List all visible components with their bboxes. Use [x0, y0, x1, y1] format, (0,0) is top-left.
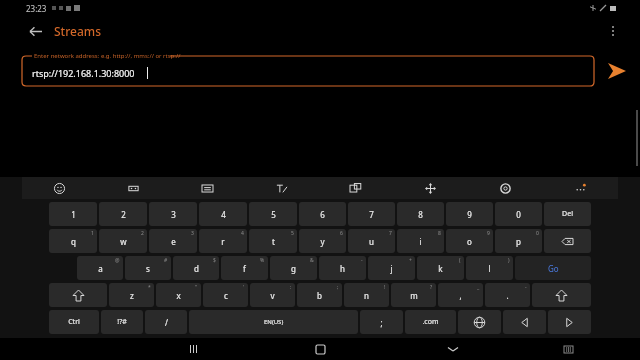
button[interactable]: Split keyboard: [318, 177, 393, 199]
button[interactable]: Handwriting: [244, 177, 318, 199]
button[interactable]: i: [397, 229, 444, 253]
button[interactable]: 2: [99, 202, 147, 226]
staticText: !: [384, 284, 386, 291]
button[interactable]: !?#: [101, 310, 143, 334]
button[interactable]: Ctrl: [49, 310, 99, 334]
staticText: k: [438, 263, 443, 274]
button[interactable]: Del: [544, 202, 591, 226]
button[interactable]: x: [156, 283, 201, 307]
button[interactable]: s: [125, 256, 171, 280]
button[interactable]: c: [203, 283, 248, 307]
button[interactable]: u: [348, 229, 395, 253]
button[interactable]: Hide keyboard: [440, 338, 466, 360]
button[interactable]: Shift: [532, 283, 591, 307]
staticText: (: [459, 257, 461, 264]
staticText: !?#: [117, 317, 127, 327]
staticText: -: [361, 257, 363, 264]
button[interactable]: n: [344, 283, 389, 307]
button[interactable]: Change language: [458, 310, 501, 334]
button[interactable]: 1: [49, 202, 97, 226]
button[interactable]: Recents: [180, 338, 206, 360]
staticText: Streams: [54, 23, 101, 39]
button[interactable]: Keyboard layout: [558, 339, 578, 359]
button[interactable]: h: [319, 256, 366, 280]
button[interactable]: b: [297, 283, 342, 307]
button[interactable]: Shift: [49, 283, 107, 307]
button[interactable]: Settings: [468, 177, 543, 199]
button[interactable]: Home: [307, 338, 333, 360]
button[interactable]: Backspace: [544, 229, 591, 253]
button[interactable]: q: [49, 229, 97, 253]
staticText: z: [130, 290, 134, 301]
button[interactable]: Enter network address: e.g. http://, mms…: [22, 56, 594, 86]
button[interactable]: o: [446, 229, 493, 253]
button[interactable]: f: [221, 256, 268, 280]
button[interactable]: Move right: [548, 310, 591, 334]
button[interactable]: Keyboard layout: [170, 177, 244, 199]
staticText: r: [221, 236, 225, 247]
button[interactable]: 6: [299, 202, 346, 226]
staticText: ;: [380, 317, 383, 328]
staticText: 2: [141, 230, 144, 237]
staticText: ;: [337, 284, 339, 291]
button[interactable]: p: [495, 229, 542, 253]
staticText: ?: [430, 284, 433, 291]
staticText: ": [195, 284, 198, 291]
button[interactable]: w: [99, 229, 147, 253]
button[interactable]: 7: [348, 202, 395, 226]
button[interactable]: 0: [495, 202, 542, 226]
staticText: o: [467, 236, 472, 247]
button[interactable]: y: [299, 229, 346, 253]
button[interactable]: t: [249, 229, 297, 253]
button[interactable]: More options: [600, 18, 626, 44]
button[interactable]: Stickers: [96, 177, 170, 199]
staticText: Enter network address: e.g. http://, mms…: [34, 52, 181, 60]
button[interactable]: a: [77, 256, 123, 280]
staticText: ): [508, 257, 510, 264]
button[interactable]: Move left: [503, 310, 546, 334]
button[interactable]: /: [145, 310, 187, 334]
staticText: .: [506, 290, 509, 301]
staticText: 6: [320, 209, 325, 220]
staticText: i: [419, 236, 422, 247]
staticText: #: [164, 257, 168, 264]
staticText: 23:23: [26, 3, 47, 14]
button[interactable]: l: [466, 256, 513, 280]
staticText: q: [71, 236, 76, 247]
staticText: a: [98, 263, 103, 274]
button[interactable]: v: [250, 283, 295, 307]
staticText: t: [272, 236, 275, 247]
button[interactable]: m: [391, 283, 436, 307]
staticText: 3: [191, 230, 194, 237]
button[interactable]: 5: [249, 202, 297, 226]
button[interactable]: Back: [22, 18, 48, 44]
button[interactable]: ;: [360, 310, 403, 334]
staticText: h: [340, 263, 345, 274]
button[interactable]: 8: [397, 202, 444, 226]
staticText: %: [260, 257, 265, 264]
button[interactable]: ,: [438, 283, 483, 307]
staticText: j: [390, 263, 393, 274]
button[interactable]: e: [149, 229, 197, 253]
button[interactable]: More: [543, 177, 618, 199]
staticText: 5: [291, 230, 294, 237]
button[interactable]: Go: [515, 256, 591, 280]
button[interactable]: j: [368, 256, 415, 280]
button[interactable]: r: [199, 229, 247, 253]
button[interactable]: .com: [405, 310, 456, 334]
button[interactable]: d: [173, 256, 219, 280]
button[interactable]: z: [109, 283, 154, 307]
button[interactable]: k: [417, 256, 464, 280]
button[interactable]: EN(US): [189, 310, 358, 334]
staticText: 4: [241, 230, 244, 237]
button[interactable]: 3: [149, 202, 197, 226]
button[interactable]: Move keyboard: [393, 177, 468, 199]
button[interactable]: Emoji: [22, 177, 96, 199]
staticText: u: [369, 236, 374, 247]
button[interactable]: Send: [594, 52, 640, 90]
staticText: 1: [91, 230, 94, 237]
button[interactable]: g: [270, 256, 317, 280]
button[interactable]: .: [485, 283, 530, 307]
button[interactable]: 4: [199, 202, 247, 226]
button[interactable]: 9: [446, 202, 493, 226]
